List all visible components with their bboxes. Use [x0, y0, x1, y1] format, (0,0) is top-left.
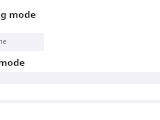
- staticText: Driving mode: [0, 8, 36, 21]
- staticText: mode: [0, 56, 25, 69]
- button[interactable]: Name text field: [0, 33, 44, 51]
- staticText: Name: [0, 37, 7, 46]
